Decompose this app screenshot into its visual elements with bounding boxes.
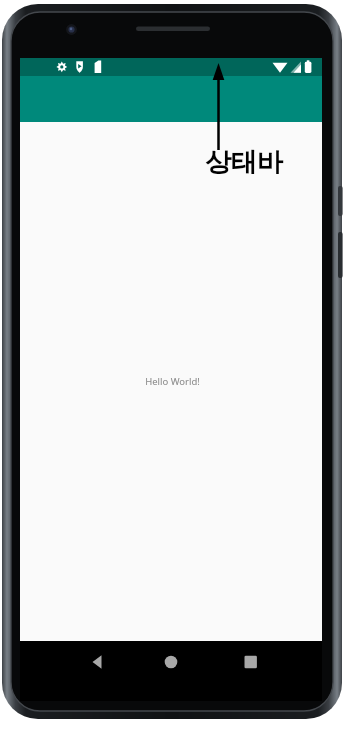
staticText: 상태바 xyxy=(205,146,283,179)
button[interactable]: 상태바 xyxy=(205,146,283,179)
button[interactable]: Recent apps xyxy=(230,645,270,679)
button[interactable]: Home xyxy=(151,645,191,679)
button[interactable]: Back xyxy=(77,645,117,679)
button[interactable]: Hello World! xyxy=(145,375,200,388)
